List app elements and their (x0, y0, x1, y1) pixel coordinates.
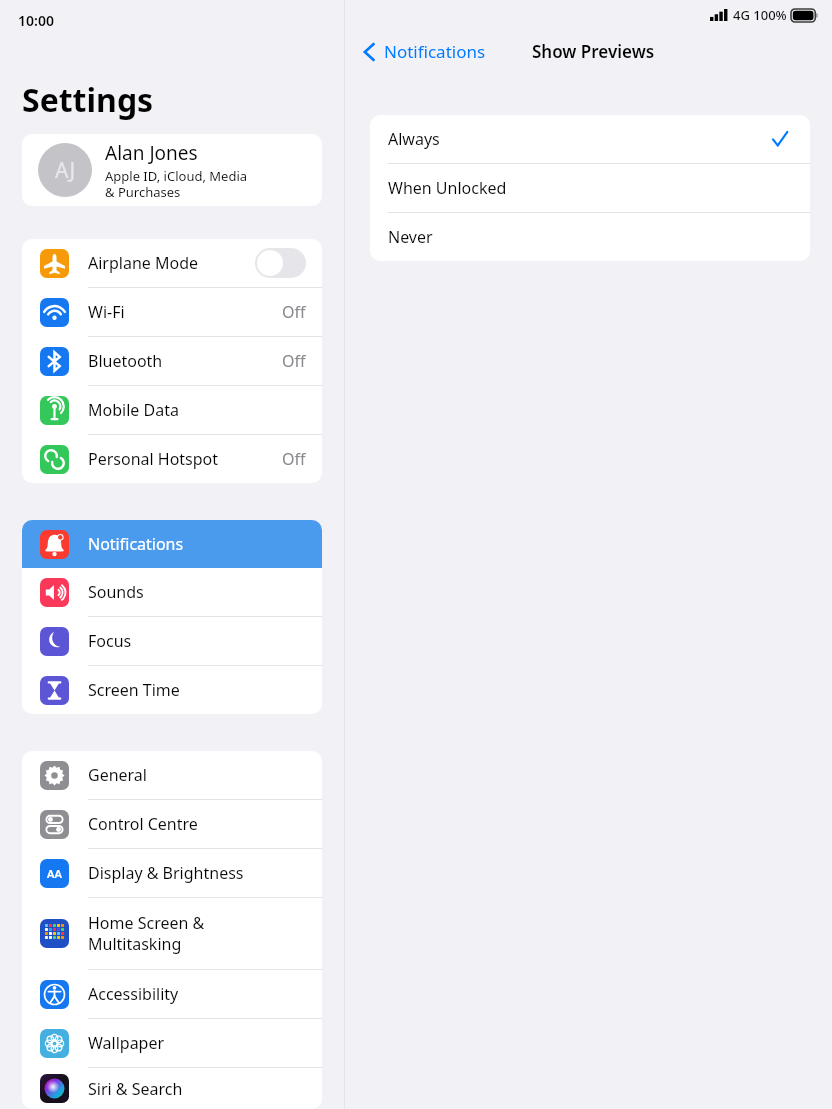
staticText: Show Previews (532, 40, 655, 63)
button[interactable]: Control Centre (22, 800, 322, 848)
button[interactable]: Accessibility (22, 970, 322, 1018)
staticText: Home Screen & Multitasking (88, 912, 306, 955)
staticText: 4G 100% (733, 6, 787, 24)
staticText: AJ (55, 156, 76, 185)
button[interactable]: Mobile Data (22, 386, 322, 434)
button[interactable]: Never (370, 213, 810, 261)
staticText: Notifications (88, 533, 306, 555)
button[interactable]: Airplane Mode (22, 239, 322, 287)
button[interactable]: Bluetooth (22, 337, 322, 385)
staticText: Wi-Fi (88, 301, 282, 323)
staticText: Off (282, 448, 306, 470)
button[interactable]: AJ (22, 134, 322, 206)
staticText: Off (282, 301, 306, 323)
button[interactable]: Personal Hotspot (22, 435, 322, 483)
staticText: Notifications (384, 40, 486, 63)
staticText: Mobile Data (88, 399, 306, 421)
staticText: Screen Time (88, 679, 306, 701)
button[interactable]: Notifications (345, 36, 494, 67)
staticText: Bluetooth (88, 350, 282, 372)
button[interactable]: AA (22, 849, 322, 897)
staticText: Apple ID, iCloud, Media & Purchases (105, 167, 248, 200)
button[interactable]: Wi-Fi (22, 288, 322, 336)
button[interactable]: General (22, 751, 322, 799)
staticText: Focus (88, 630, 306, 652)
staticText: Control Centre (88, 813, 306, 835)
button[interactable]: Focus (22, 617, 322, 665)
staticText: Display & Brightness (88, 862, 306, 884)
button[interactable]: Always (370, 115, 810, 163)
staticText: 10:00 (18, 11, 54, 30)
staticText: Alan Jones (105, 140, 198, 166)
staticText: General (88, 764, 306, 786)
staticText: Siri & Search (88, 1078, 306, 1100)
staticText: Never (388, 226, 792, 248)
staticText: Sounds (88, 581, 306, 603)
staticText: AA (47, 866, 62, 881)
button[interactable]: Sounds (22, 568, 322, 616)
staticText: Always (388, 128, 772, 150)
staticText: Settings (22, 78, 154, 122)
staticText: Wallpaper (88, 1032, 306, 1054)
button[interactable]: Notifications (22, 520, 322, 568)
button[interactable]: Wallpaper (22, 1019, 322, 1067)
button[interactable]: Home Screen & Multitasking (22, 898, 322, 969)
staticText: Personal Hotspot (88, 448, 282, 470)
button[interactable]: When Unlocked (370, 164, 810, 212)
staticText: When Unlocked (388, 177, 792, 199)
staticText: Airplane Mode (88, 252, 255, 274)
staticText: Accessibility (88, 983, 306, 1005)
button[interactable]: Screen Time (22, 666, 322, 714)
staticText: Off (282, 350, 306, 372)
button[interactable]: Siri & Search (22, 1068, 322, 1109)
